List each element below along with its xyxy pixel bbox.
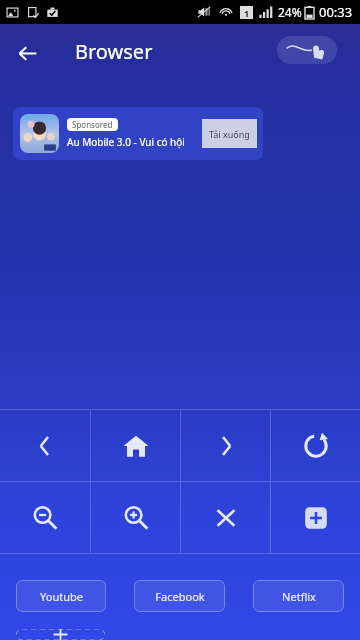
button[interactable]: back bbox=[0, 410, 90, 481]
button[interactable]: Netflix bbox=[253, 580, 344, 612]
button[interactable]: Back bbox=[12, 38, 42, 68]
button[interactable]: Add bookmark bbox=[16, 629, 105, 640]
button[interactable]: Sponsored bbox=[13, 107, 263, 160]
button[interactable]: add bbox=[271, 482, 360, 553]
staticText: 1 bbox=[244, 7, 250, 19]
button[interactable]: forward bbox=[181, 410, 270, 481]
button[interactable]: refresh bbox=[271, 410, 360, 481]
button[interactable]: zoomin bbox=[91, 482, 180, 553]
button[interactable]: zoomout bbox=[0, 482, 90, 553]
button[interactable]: home bbox=[91, 410, 180, 481]
staticText: Facebook bbox=[155, 589, 205, 604]
staticText: Sponsored bbox=[72, 119, 113, 130]
staticText: Tải xuống bbox=[209, 128, 250, 140]
button[interactable]: Facebook bbox=[134, 580, 225, 612]
staticText: 00:33 bbox=[319, 3, 353, 21]
staticText: Au Mobile 3.0 - Vui có hội bbox=[67, 135, 185, 149]
button[interactable]: Youtube bbox=[16, 580, 106, 612]
staticText: Browser bbox=[75, 38, 153, 65]
button[interactable]: Gesture mode bbox=[277, 36, 337, 64]
staticText: Youtube bbox=[40, 589, 83, 604]
staticText: 24% bbox=[278, 4, 302, 20]
button[interactable]: Tải xuống bbox=[202, 119, 257, 148]
button[interactable]: close bbox=[181, 482, 270, 553]
staticText: Netflix bbox=[282, 589, 316, 604]
